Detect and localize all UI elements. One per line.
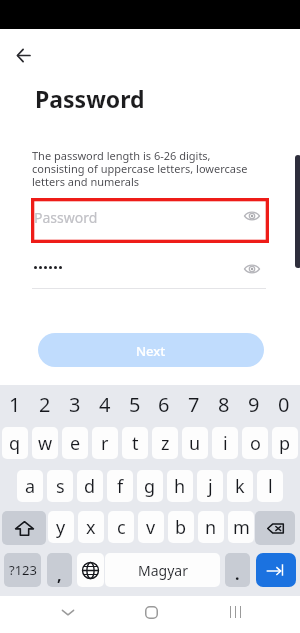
staticText: 6	[158, 391, 170, 418]
button[interactable]: Password	[32, 199, 268, 242]
button[interactable]: 5	[120, 389, 150, 419]
button[interactable]: u	[182, 427, 208, 459]
staticText: d	[84, 474, 96, 499]
button[interactable]: n	[198, 511, 224, 543]
button[interactable]: w	[32, 427, 58, 459]
staticText: p	[279, 431, 291, 456]
staticText: .	[235, 563, 240, 585]
button[interactable]: l	[257, 470, 283, 502]
button[interactable]: s	[47, 470, 73, 502]
button[interactable]: .	[225, 553, 250, 587]
button[interactable]: 1	[0, 389, 30, 419]
button[interactable]: 9	[239, 389, 269, 419]
button[interactable]	[256, 553, 296, 587]
button[interactable]: g	[137, 470, 163, 502]
staticText: q	[9, 431, 21, 456]
button[interactable]: Show password	[32, 258, 268, 292]
staticText: o	[250, 431, 261, 456]
button[interactable]: Home	[136, 597, 166, 627]
button[interactable]: Back	[53, 597, 83, 627]
button[interactable]: q	[2, 427, 28, 459]
button[interactable]: Show password	[243, 207, 261, 225]
staticText: u	[189, 431, 201, 456]
button[interactable]: 3	[60, 389, 90, 419]
button[interactable]: 8	[209, 389, 239, 419]
staticText: g	[144, 474, 156, 499]
staticText: 1	[9, 391, 21, 418]
button[interactable]: x	[78, 511, 104, 543]
staticText: y	[56, 515, 66, 540]
staticText: 3	[69, 391, 81, 418]
button[interactable]: r	[92, 427, 118, 459]
button[interactable]: Recent apps	[220, 597, 250, 627]
button[interactable]: 0	[269, 389, 299, 419]
button[interactable]	[2, 511, 46, 545]
button[interactable]: Next	[38, 333, 264, 367]
staticText: 9	[248, 391, 260, 418]
staticText: l	[268, 474, 273, 499]
button[interactable]: c	[108, 511, 134, 543]
button[interactable]	[255, 511, 295, 545]
button[interactable]: 2	[30, 389, 60, 419]
button[interactable]: ?123	[4, 553, 41, 587]
staticText: m	[233, 515, 250, 540]
button[interactable]: Back	[8, 40, 38, 70]
staticText: f	[117, 474, 124, 499]
button[interactable]: b	[168, 511, 194, 543]
button[interactable]: e	[62, 427, 88, 459]
staticText: x	[86, 515, 96, 540]
staticText: ,	[57, 564, 62, 586]
button[interactable]: Show password	[243, 260, 261, 278]
button[interactable]	[77, 553, 104, 587]
staticText: Password	[34, 208, 98, 227]
staticText: s	[56, 474, 65, 499]
staticText: c	[117, 515, 126, 540]
button[interactable]: v	[138, 511, 164, 543]
staticText: 0	[278, 391, 290, 418]
staticText: The password length is 6-26 digits, cons…	[32, 148, 258, 189]
staticText: k	[235, 474, 245, 499]
button[interactable]: Magyar	[105, 553, 220, 587]
button[interactable]: d	[77, 470, 103, 502]
button[interactable]: 6	[149, 389, 179, 419]
staticText: w	[38, 431, 53, 456]
button[interactable]: o	[242, 427, 268, 459]
staticText: n	[205, 515, 217, 540]
button[interactable]: m	[228, 511, 254, 543]
button[interactable]: ,	[47, 553, 72, 587]
button[interactable]: y	[48, 511, 74, 543]
staticText: 7	[188, 391, 200, 418]
button[interactable]: f	[107, 470, 133, 502]
button[interactable]: a	[17, 470, 43, 502]
staticText: 8	[218, 391, 230, 418]
button[interactable]: j	[197, 470, 223, 502]
button[interactable]: t	[122, 427, 148, 459]
staticText: 2	[39, 391, 51, 418]
staticText: a	[25, 474, 36, 499]
staticText: z	[161, 431, 170, 456]
staticText: Next	[136, 342, 166, 360]
staticText: 5	[129, 391, 141, 418]
button[interactable]: p	[272, 427, 298, 459]
staticText: b	[175, 515, 187, 540]
staticText: Password	[35, 83, 145, 114]
button[interactable]: i	[212, 427, 238, 459]
staticText: Magyar	[138, 561, 188, 580]
button[interactable]: k	[227, 470, 253, 502]
staticText: j	[208, 474, 213, 499]
button[interactable]: 4	[90, 389, 120, 419]
button[interactable]: z	[152, 427, 178, 459]
staticText: e	[70, 431, 81, 456]
staticText: 4	[99, 391, 111, 418]
button[interactable]: 7	[179, 389, 209, 419]
staticText: h	[174, 474, 186, 499]
staticText: r	[101, 431, 109, 456]
staticText: i	[223, 431, 228, 456]
staticText: t	[132, 431, 139, 456]
staticText: v	[146, 515, 156, 540]
staticText: ?123	[9, 561, 37, 579]
button[interactable]: h	[167, 470, 193, 502]
